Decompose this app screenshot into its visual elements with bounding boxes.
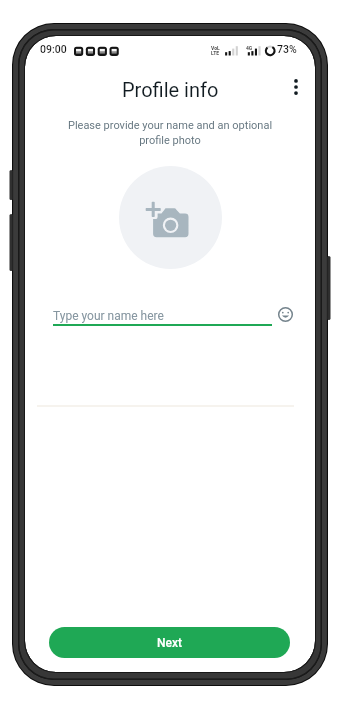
- staticText: Please provide your name and an optional…: [33, 119, 307, 147]
- button[interactable]: More options: [281, 72, 311, 102]
- staticText: VoL LTE: [211, 45, 220, 56]
- button[interactable]: Add profile photo: [119, 166, 222, 269]
- staticText: 73%: [277, 43, 297, 55]
- staticText: Profile info: [122, 78, 219, 101]
- staticText: 4G: [246, 45, 253, 51]
- button[interactable]: Emoji: [270, 299, 301, 330]
- staticText: Type your name here: [53, 309, 164, 323]
- staticText: 09:00: [40, 43, 67, 55]
- button[interactable]: Next: [49, 627, 290, 658]
- staticText: Next: [157, 636, 183, 650]
